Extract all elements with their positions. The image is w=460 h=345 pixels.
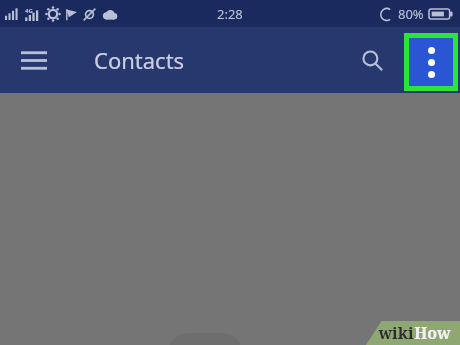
staticText: Contacts bbox=[94, 45, 185, 75]
staticText: wiki bbox=[378, 322, 414, 344]
staticText: 80% bbox=[398, 5, 424, 23]
staticText: 4G bbox=[25, 7, 33, 15]
button[interactable]: Open navigation menu bbox=[10, 36, 58, 84]
button[interactable]: More options bbox=[409, 38, 453, 86]
staticText: How bbox=[414, 322, 451, 344]
staticText: 2:28 bbox=[217, 5, 243, 23]
button[interactable]: Search bbox=[350, 38, 394, 82]
